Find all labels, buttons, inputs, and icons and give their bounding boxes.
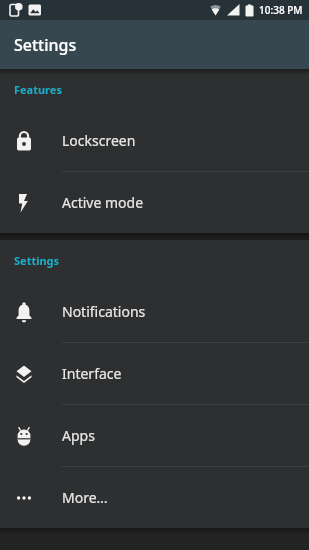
staticText: Apps xyxy=(62,426,95,445)
staticText: Settings xyxy=(14,34,77,56)
staticText: Interface xyxy=(62,364,122,383)
staticText: Lockscreen xyxy=(62,131,136,150)
staticText: Notifications xyxy=(62,302,146,321)
staticText: 10:38 PM xyxy=(259,3,303,17)
staticText: Active mode xyxy=(62,193,144,212)
staticText: Settings xyxy=(14,253,60,268)
staticText: Features xyxy=(14,82,62,97)
staticText: More… xyxy=(62,488,108,507)
